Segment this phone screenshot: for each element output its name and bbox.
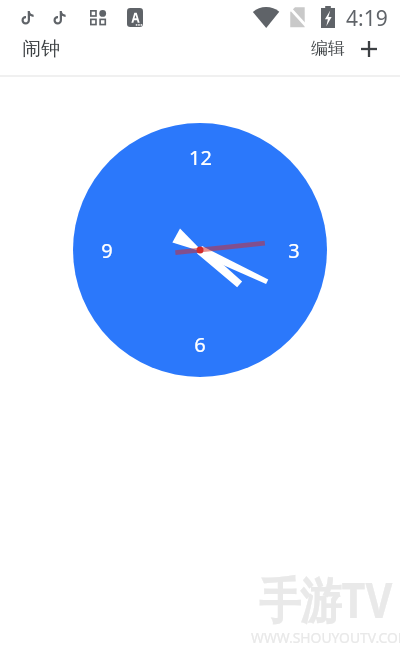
- staticText: 手游TV: [259, 566, 392, 633]
- staticText: 闹钟: [22, 37, 60, 61]
- staticText: 3: [288, 237, 300, 264]
- staticText: 4:19: [346, 4, 388, 33]
- staticText: WWW.SHOUYOUTV.COM: [251, 628, 400, 647]
- staticText: 9: [101, 237, 113, 264]
- button[interactable]: Add alarm: [351, 31, 387, 67]
- button[interactable]: 编辑: [303, 33, 353, 75]
- staticText: 6: [194, 331, 206, 358]
- staticText: 12: [189, 144, 212, 171]
- staticText: 编辑: [311, 38, 345, 59]
